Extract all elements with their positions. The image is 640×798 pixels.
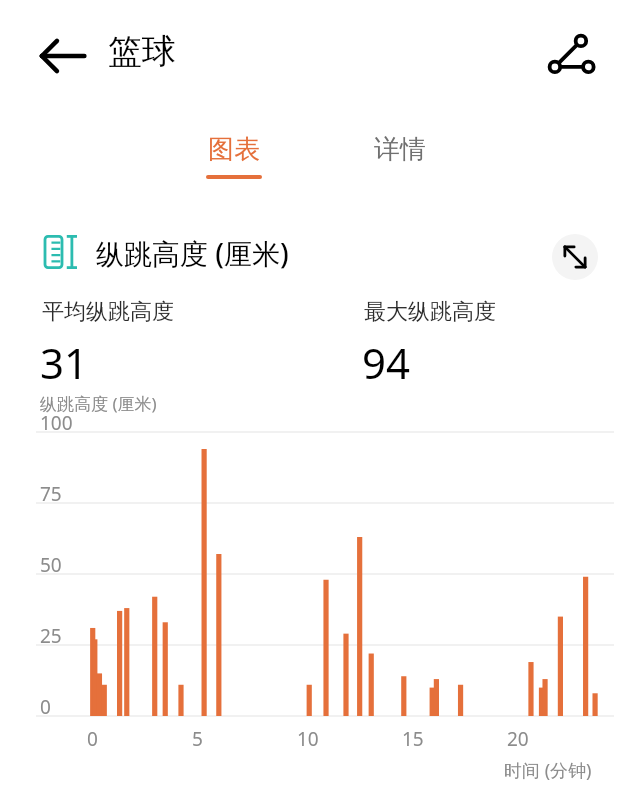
staticText: 时间 (分钟) — [504, 758, 592, 783]
button[interactable]: Share — [540, 26, 602, 88]
staticText: 10 — [297, 726, 319, 752]
staticText: 94 — [362, 334, 411, 391]
staticText: 15 — [402, 726, 424, 752]
staticText: 最大纵跳高度 — [364, 298, 496, 326]
staticText: 100 — [40, 410, 73, 436]
button[interactable]: 图表 — [196, 130, 272, 182]
button[interactable]: 详情 — [364, 130, 436, 169]
staticText: 75 — [40, 481, 62, 507]
staticText: 50 — [40, 552, 62, 578]
button[interactable]: Back — [34, 28, 90, 84]
staticText: 0 — [40, 694, 51, 720]
button[interactable]: Expand chart — [552, 234, 598, 280]
staticText: 5 — [192, 726, 203, 752]
staticText: 篮球 — [108, 30, 176, 73]
staticText: 纵跳高度 (厘米) — [96, 234, 289, 272]
staticText: 31 — [40, 334, 89, 391]
staticText: 0 — [87, 726, 98, 752]
staticText: 25 — [40, 623, 62, 649]
staticText: 平均纵跳高度 — [42, 298, 174, 326]
staticText: 纵跳高度 (厘米) — [40, 392, 157, 415]
staticText: 图表 — [208, 133, 260, 166]
staticText: 详情 — [374, 133, 426, 166]
staticText: 20 — [507, 726, 529, 752]
